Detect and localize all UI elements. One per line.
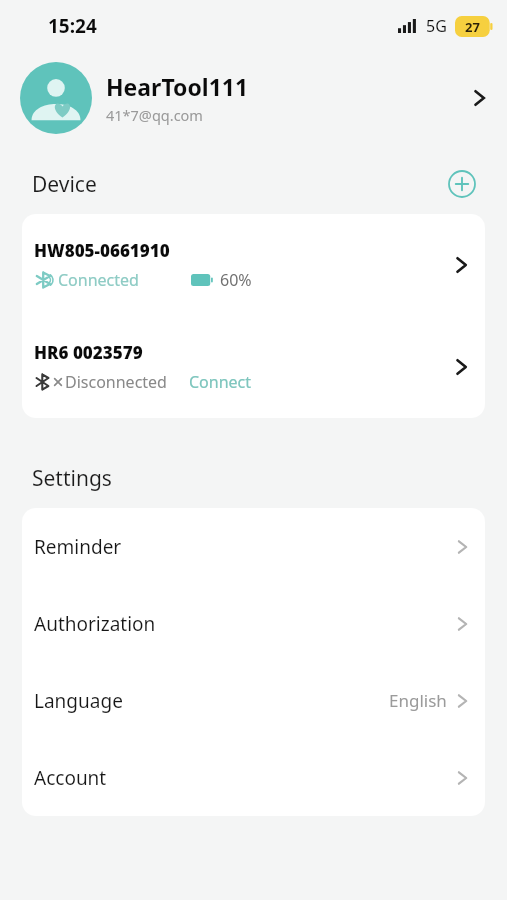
- button[interactable]: Add device: [445, 167, 479, 201]
- staticText: Account: [34, 765, 455, 791]
- staticText: Device: [32, 170, 445, 199]
- staticText: Reminder: [34, 534, 455, 560]
- staticText: English: [389, 689, 447, 712]
- staticText: 27: [465, 18, 480, 36]
- staticText: Disconnected: [65, 371, 167, 393]
- staticText: HR6 0023579: [34, 341, 143, 364]
- staticText: 15:24: [48, 13, 97, 39]
- staticText: HearTool111: [106, 71, 249, 102]
- button[interactable]: Connect: [189, 371, 252, 393]
- button[interactable]: HW805-0661910: [22, 214, 485, 316]
- button[interactable]: Language: [22, 662, 485, 739]
- staticText: 41*7@qq.com: [106, 105, 203, 125]
- staticText: Connected: [58, 269, 139, 291]
- staticText: Connect: [189, 371, 252, 393]
- button[interactable]: Account: [22, 739, 485, 816]
- staticText: HW805-0661910: [34, 239, 170, 262]
- button[interactable]: HearTool111: [0, 52, 507, 144]
- button[interactable]: Reminder: [22, 508, 485, 585]
- staticText: Settings: [32, 464, 479, 493]
- button[interactable]: Authorization: [22, 585, 485, 662]
- staticText: Authorization: [34, 611, 455, 637]
- staticText: Language: [34, 688, 389, 714]
- staticText: 60%: [220, 269, 252, 291]
- button[interactable]: HR6 0023579: [22, 316, 485, 418]
- staticText: 5G: [426, 15, 447, 37]
